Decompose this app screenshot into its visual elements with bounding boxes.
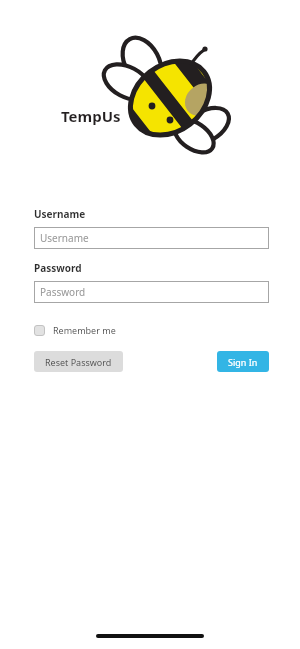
button[interactable]: Password [34, 281, 269, 303]
staticText: Sign In [228, 356, 258, 368]
button[interactable]: Reset Password [34, 351, 123, 372]
button[interactable]: Sign In [217, 351, 269, 372]
staticText: Password [40, 285, 86, 299]
staticText: TempUs [61, 106, 121, 126]
staticText: Username [40, 231, 89, 245]
staticText: Password [34, 261, 82, 275]
button[interactable]: Username [34, 227, 269, 249]
staticText: Reset Password [45, 356, 112, 368]
staticText: Remember me [53, 324, 116, 336]
staticText: Username [34, 207, 86, 221]
button[interactable]: Remember me [34, 322, 116, 338]
